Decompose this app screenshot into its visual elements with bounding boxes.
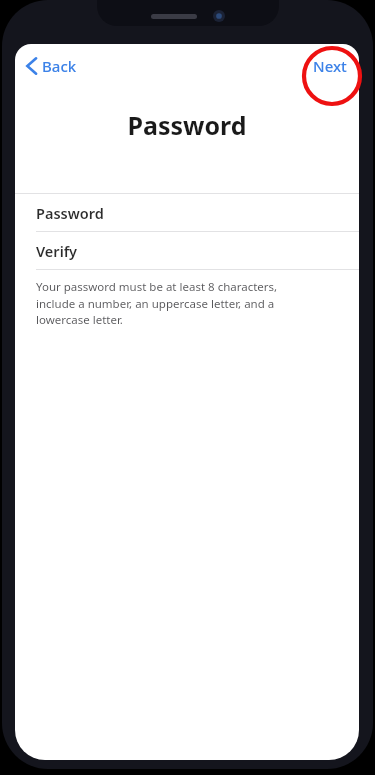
staticText: Password (36, 203, 104, 223)
staticText: Password (15, 108, 359, 142)
button[interactable]: Password (15, 194, 359, 231)
staticText: Back (42, 56, 77, 76)
staticText: Verify (36, 241, 78, 261)
button[interactable]: Verify (15, 232, 359, 269)
button[interactable]: Back (15, 50, 91, 82)
staticText: Your password must be at least 8 charact… (36, 279, 315, 327)
staticText: Next (313, 56, 347, 76)
button[interactable]: Next (299, 50, 359, 82)
